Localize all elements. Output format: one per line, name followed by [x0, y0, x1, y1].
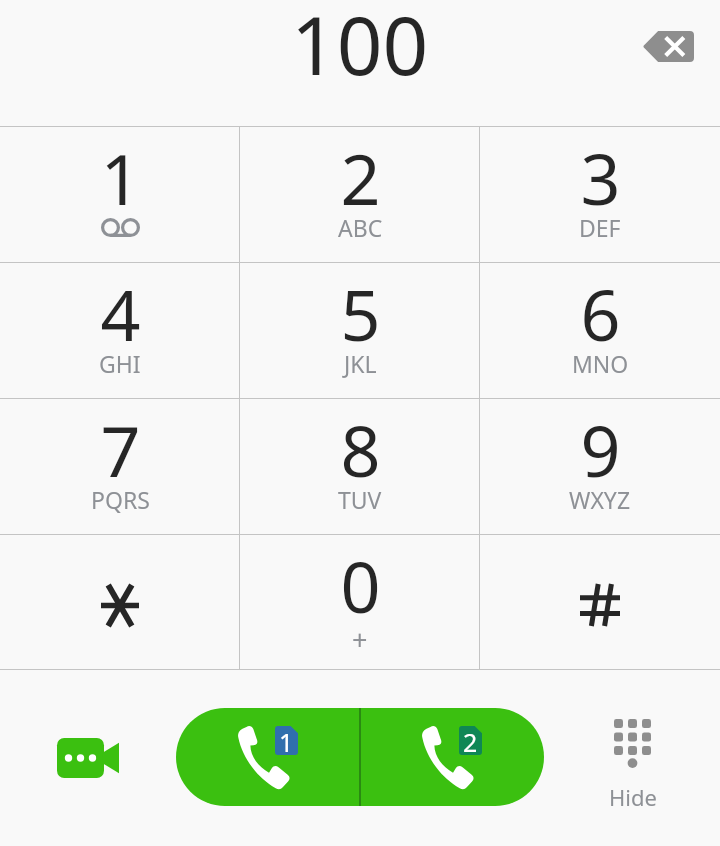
- staticText: 7: [100, 402, 141, 497]
- button[interactable]: 1: [0, 126, 240, 262]
- staticText: WXYZ: [569, 484, 631, 515]
- staticText: MNO: [572, 348, 629, 379]
- staticText: 4: [100, 266, 141, 361]
- staticText: ABC: [338, 212, 383, 243]
- button[interactable]: 8: [240, 398, 480, 534]
- staticText: 6: [580, 266, 621, 361]
- staticText: Hide: [609, 782, 657, 812]
- staticText: +: [352, 621, 368, 658]
- staticText: 100: [291, 0, 429, 98]
- button[interactable]: [0, 534, 240, 670]
- staticText: DEF: [579, 212, 621, 243]
- staticText: 2: [463, 725, 478, 754]
- staticText: GHI: [99, 348, 141, 379]
- staticText: 3: [580, 130, 621, 225]
- button[interactable]: Call with SIM 1: [176, 708, 360, 806]
- button[interactable]: [480, 534, 720, 670]
- button[interactable]: Call with SIM 2: [360, 708, 544, 806]
- button[interactable]: 4: [0, 262, 240, 398]
- staticText: TUV: [338, 484, 382, 515]
- button[interactable]: 3: [480, 126, 720, 262]
- button[interactable]: 0: [240, 534, 480, 670]
- staticText: 1: [279, 725, 294, 754]
- staticText: JKL: [344, 348, 377, 379]
- button[interactable]: 5: [240, 262, 480, 398]
- staticText: 1: [100, 130, 141, 225]
- staticText: 2: [340, 130, 381, 225]
- staticText: 8: [340, 402, 381, 497]
- button[interactable]: 9: [480, 398, 720, 534]
- staticText: 5: [340, 266, 381, 361]
- staticText: 0: [340, 538, 381, 633]
- button[interactable]: 6: [480, 262, 720, 398]
- button[interactable]: Backspace: [632, 10, 704, 82]
- staticText: PQRS: [91, 484, 150, 515]
- button[interactable]: 2: [240, 126, 480, 262]
- button[interactable]: 7: [0, 398, 240, 534]
- button[interactable]: Hide: [577, 711, 688, 820]
- staticText: 9: [580, 402, 621, 497]
- button[interactable]: Video call: [40, 710, 136, 806]
